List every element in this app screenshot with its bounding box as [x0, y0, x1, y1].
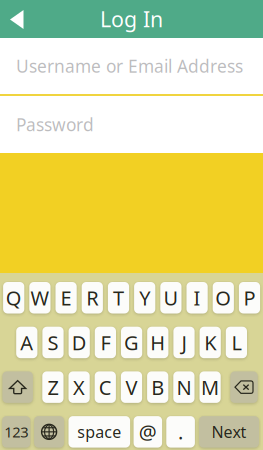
staticText: S: [47, 329, 58, 356]
staticText: X: [73, 374, 85, 400]
button[interactable]: H: [147, 327, 168, 358]
button[interactable]: Q: [3, 282, 24, 313]
staticText: space: [77, 421, 121, 442]
button[interactable]: Next: [199, 416, 259, 448]
button[interactable]: Delete: [230, 371, 258, 403]
staticText: V: [125, 374, 137, 400]
button[interactable]: Password: [0, 96, 263, 153]
staticText: 123: [4, 422, 28, 442]
staticText: T: [113, 284, 124, 311]
staticText: B: [151, 374, 164, 400]
staticText: F: [100, 329, 110, 356]
staticText: O: [215, 284, 231, 311]
button[interactable]: 123: [2, 416, 30, 448]
button[interactable]: B: [147, 371, 168, 403]
staticText: N: [176, 374, 191, 400]
staticText: K: [204, 329, 216, 356]
button[interactable]: X: [68, 371, 90, 403]
button[interactable]: U: [160, 282, 181, 313]
button[interactable]: Z: [42, 371, 63, 403]
staticText: @: [139, 419, 157, 445]
staticText: Password: [16, 113, 94, 136]
button[interactable]: V: [121, 371, 142, 403]
button[interactable]: S: [42, 327, 64, 358]
button[interactable]: O: [213, 282, 234, 313]
staticText: G: [124, 329, 139, 356]
staticText: .: [178, 419, 183, 445]
staticText: U: [163, 284, 178, 311]
staticText: E: [61, 284, 72, 311]
button[interactable]: N: [173, 371, 194, 403]
button[interactable]: C: [95, 371, 116, 403]
staticText: D: [72, 329, 87, 356]
button[interactable]: Back: [0, 0, 40, 38]
staticText: Y: [139, 284, 150, 311]
button[interactable]: W: [29, 282, 50, 313]
button[interactable]: Username or Email Address: [0, 38, 263, 94]
button[interactable]: G: [121, 327, 142, 358]
button[interactable]: E: [55, 282, 77, 313]
staticText: Log In: [100, 5, 163, 33]
staticText: L: [231, 329, 241, 356]
button[interactable]: F: [95, 327, 116, 358]
staticText: J: [181, 329, 186, 356]
staticText: Next: [211, 421, 246, 442]
button[interactable]: Switch keyboard: [34, 416, 64, 448]
staticText: M: [201, 374, 219, 400]
button[interactable]: L: [226, 327, 247, 358]
button[interactable]: A: [16, 327, 37, 358]
button[interactable]: @: [134, 416, 162, 448]
button[interactable]: Y: [134, 282, 155, 313]
staticText: Z: [47, 374, 58, 400]
button[interactable]: T: [108, 282, 129, 313]
button[interactable]: K: [200, 327, 221, 358]
staticText: R: [86, 284, 98, 311]
staticText: H: [150, 329, 165, 356]
button[interactable]: Shift: [2, 371, 33, 403]
staticText: W: [30, 284, 49, 311]
button[interactable]: R: [82, 282, 103, 313]
staticText: A: [20, 329, 33, 356]
button[interactable]: space: [68, 416, 130, 448]
staticText: Username or Email Address: [16, 54, 243, 77]
button[interactable]: D: [69, 327, 90, 358]
staticText: I: [194, 284, 201, 311]
staticText: P: [243, 284, 255, 311]
button[interactable]: J: [173, 327, 195, 358]
button[interactable]: I: [186, 282, 208, 313]
staticText: C: [99, 374, 112, 400]
button[interactable]: .: [166, 416, 195, 448]
staticText: Q: [6, 284, 22, 311]
button[interactable]: P: [239, 282, 260, 313]
button[interactable]: M: [199, 371, 221, 403]
